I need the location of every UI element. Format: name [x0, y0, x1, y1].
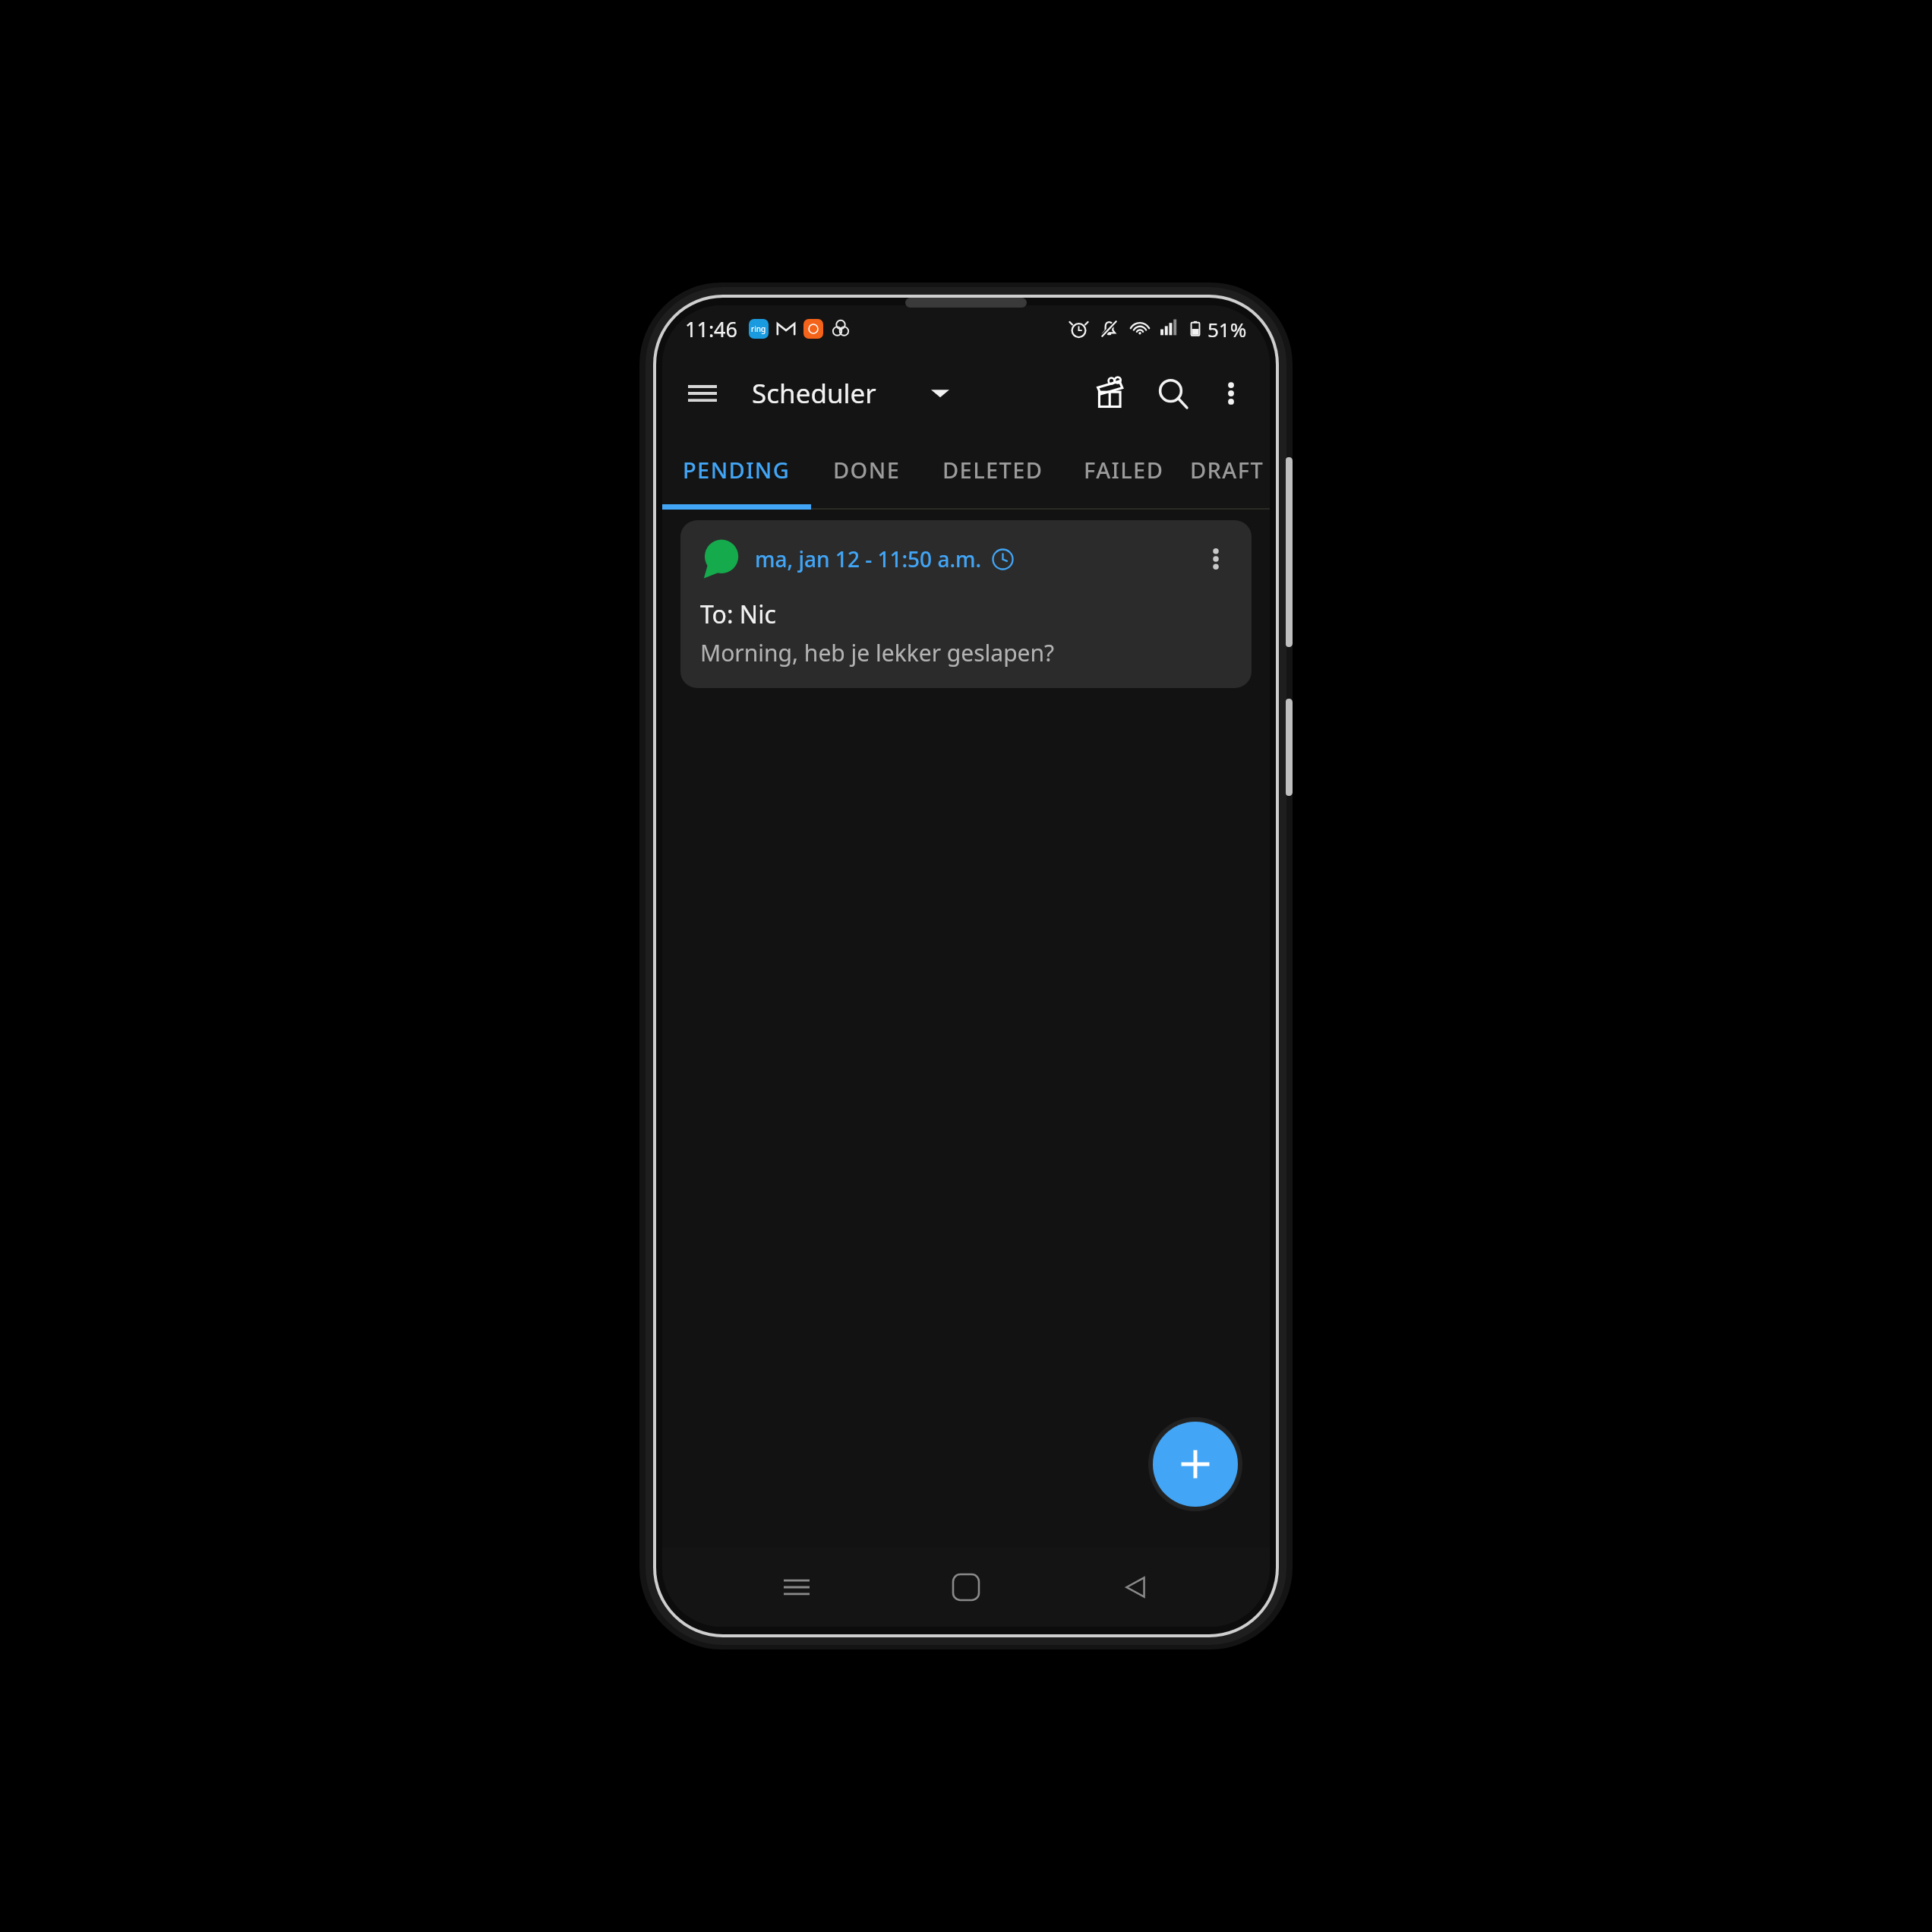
button[interactable]: ma, jan 12 - 11:50 a.m.	[680, 520, 1252, 688]
button[interactable]: DELETED	[922, 434, 1063, 504]
button[interactable]: Gifts	[1081, 363, 1142, 424]
button[interactable]: Add new scheduled message	[1153, 1422, 1238, 1507]
staticText: 11:46	[685, 315, 738, 343]
staticText: Morning, heb je lekker geslapen?	[700, 637, 1055, 668]
button[interactable]: Home	[931, 1552, 1001, 1622]
button[interactable]: PENDING	[662, 434, 811, 504]
staticText: ma, jan 12 - 11:50 a.m.	[755, 545, 982, 573]
staticText: 51%	[1207, 316, 1247, 343]
staticText: DELETED	[942, 455, 1043, 485]
button[interactable]: Open navigation menu	[674, 365, 731, 421]
button[interactable]: Scheduler	[752, 360, 1081, 427]
staticText: ring	[751, 324, 766, 334]
staticText: DONE	[833, 455, 901, 485]
staticText: FAILED	[1084, 455, 1164, 485]
button[interactable]: DRAFT	[1185, 434, 1270, 504]
button[interactable]: Back	[1100, 1552, 1170, 1622]
button[interactable]: Recent apps	[762, 1552, 832, 1622]
staticText: Scheduler	[752, 375, 876, 412]
staticText: PENDING	[683, 455, 791, 485]
button[interactable]: Message options	[1194, 537, 1238, 581]
staticText: To: Nic	[700, 598, 776, 631]
button[interactable]: DONE	[811, 434, 922, 504]
button[interactable]: More options	[1203, 365, 1259, 421]
button[interactable]: Search	[1142, 363, 1203, 424]
button[interactable]: FAILED	[1063, 434, 1185, 504]
staticText: DRAFT	[1190, 455, 1264, 485]
